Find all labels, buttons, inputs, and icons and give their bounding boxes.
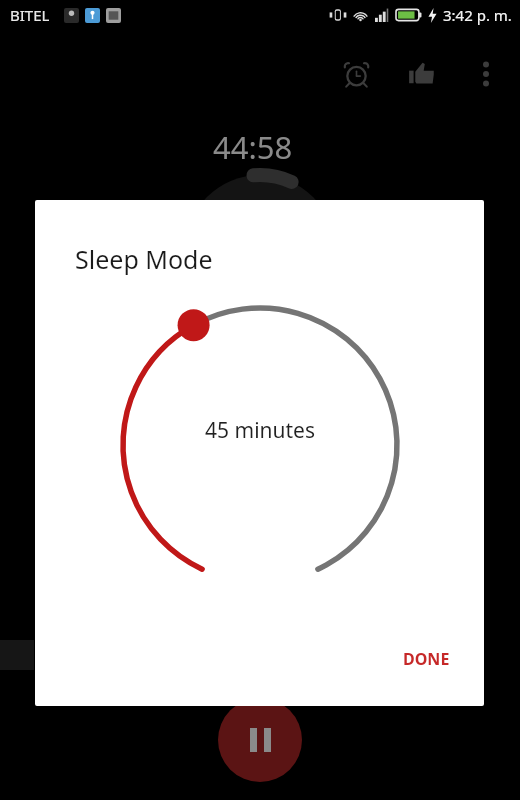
button[interactable]: Sleep timer duration slider [105, 290, 415, 600]
button[interactable]: Like [400, 52, 444, 96]
staticText: DONE [403, 648, 450, 670]
staticText: BITEL [10, 5, 50, 25]
button[interactable]: More options [466, 54, 506, 94]
staticText: 45 minutes [205, 416, 315, 445]
button[interactable]: Pause [218, 698, 302, 782]
button[interactable]: Alarm [334, 52, 378, 96]
staticText: 3:42 p. m. [443, 5, 512, 25]
staticText: Sleep Mode [75, 242, 213, 276]
button[interactable]: DONE [391, 638, 462, 680]
staticText: 44:58 [213, 126, 293, 168]
